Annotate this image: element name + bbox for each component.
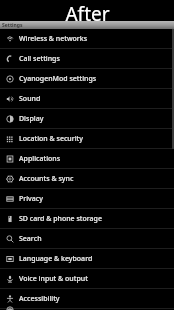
button[interactable]: Search: [0, 229, 174, 248]
staticText: Voice input & output: [19, 274, 88, 284]
button[interactable]: Dock: [0, 309, 174, 310]
staticText: Accounts & sync: [19, 174, 74, 184]
staticText: Sound: [19, 94, 41, 104]
button[interactable]: Wireless & networks: [0, 29, 174, 48]
staticText: SD card & phone storage: [19, 214, 102, 224]
button[interactable]: Voice input & output: [0, 269, 174, 288]
button[interactable]: CyanogenMod settings: [0, 69, 174, 88]
staticText: Accessibility: [19, 294, 60, 304]
staticText: Location & security: [19, 134, 83, 144]
button[interactable]: Privacy: [0, 189, 174, 208]
button[interactable]: Sound: [0, 89, 174, 108]
button[interactable]: Accessibility: [0, 289, 174, 308]
button[interactable]: Applications: [0, 149, 174, 168]
staticText: Search: [19, 234, 42, 244]
button[interactable]: Location & security: [0, 129, 174, 148]
button[interactable]: Accounts & sync: [0, 169, 174, 188]
staticText: After: [65, 1, 110, 22]
button[interactable]: Display: [0, 109, 174, 128]
button[interactable]: Call settings: [0, 49, 174, 68]
button[interactable]: Language & keyboard: [0, 249, 174, 268]
staticText: Settings: [2, 22, 23, 29]
staticText: Display: [19, 114, 44, 124]
staticText: CyanogenMod settings: [19, 74, 97, 84]
button[interactable]: SD card & phone storage: [0, 209, 174, 228]
staticText: Call settings: [19, 54, 60, 64]
staticText: Privacy: [19, 194, 43, 204]
staticText: Language & keyboard: [19, 254, 93, 264]
staticText: Applications: [19, 154, 61, 164]
staticText: Wireless & networks: [19, 34, 88, 44]
